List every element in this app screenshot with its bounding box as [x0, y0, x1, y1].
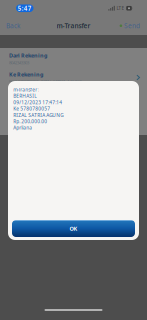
staticText: 09/12/2023 17:47:14 [13, 99, 62, 106]
staticText: BERHASIL [13, 93, 37, 99]
staticText: m-Transfer [56, 21, 90, 30]
staticText: Aprliana [13, 124, 32, 131]
staticText: LTE [116, 5, 124, 11]
button[interactable]: Jumlah [0, 86, 147, 103]
staticText: Send [124, 21, 140, 30]
staticText: 5:47 [18, 4, 32, 12]
staticText: Ke Rekening [9, 71, 43, 78]
button[interactable]: Berita [0, 103, 147, 135]
staticText: Rp. 200,000.00 [9, 96, 35, 101]
staticText: Back [6, 21, 20, 30]
staticText: Rp. 200,000.00 [13, 118, 47, 125]
staticText: RIZAL SATRIA AGUNG [13, 112, 63, 118]
staticText: Jumlah [9, 88, 29, 95]
button[interactable]: Back [0, 19, 26, 33]
button[interactable]: Dari Rekening [0, 48, 147, 69]
staticText: Dari Rekening [9, 52, 47, 59]
staticText: 8042343303 [9, 60, 29, 65]
staticText: Berita [9, 112, 25, 119]
staticText: Ke 5780780057 [13, 105, 50, 112]
staticText: 9090 5780780057 - RIZAL SATRIA AGUNG [9, 79, 82, 84]
staticText: m-Transfer : [13, 86, 39, 93]
button[interactable]: Send [115, 19, 147, 33]
button[interactable]: Ke Rekening [0, 69, 147, 86]
staticText: OK [69, 225, 77, 232]
button[interactable]: OK [12, 220, 135, 237]
